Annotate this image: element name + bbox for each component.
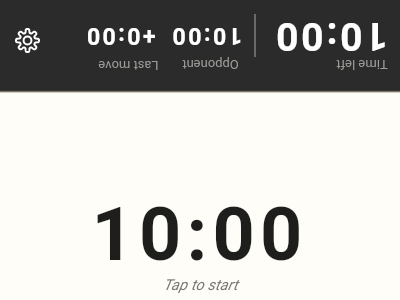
staticText: Last move (98, 58, 159, 73)
staticText: 10:00 (91, 192, 308, 278)
staticText: Opponent (182, 57, 239, 72)
button[interactable]: 10:00 (0, 90, 400, 300)
button[interactable]: Opponent clock (0, 0, 400, 90)
staticText: 10:00 (273, 13, 388, 59)
staticText: +0:00 (84, 22, 156, 49)
staticText: Tap to start (163, 276, 238, 294)
staticText: 10:00 (170, 22, 242, 49)
button[interactable]: Settings (5, 18, 49, 62)
staticText: Time left (336, 57, 388, 72)
